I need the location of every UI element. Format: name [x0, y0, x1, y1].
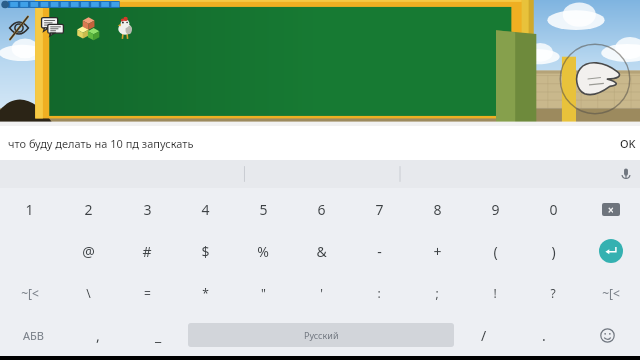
button[interactable]: Backspace: [582, 188, 640, 230]
button[interactable]: 8: [408, 188, 466, 230]
button[interactable]: !: [466, 272, 524, 314]
button[interactable]: ': [292, 272, 350, 314]
staticText: -: [377, 242, 382, 261]
button[interactable]: .: [514, 314, 574, 356]
button[interactable]: 5: [234, 188, 292, 230]
button[interactable]: \: [59, 272, 118, 314]
staticText: ': [320, 285, 323, 301]
staticText: \: [86, 285, 91, 301]
button[interactable]: @: [59, 230, 118, 272]
button[interactable]: 2: [59, 188, 118, 230]
button[interactable]: ): [524, 230, 582, 272]
staticText: 1: [25, 200, 34, 219]
staticText: &: [316, 242, 327, 261]
button[interactable]: #: [118, 230, 176, 272]
staticText: 4: [201, 200, 210, 219]
staticText: .: [542, 326, 546, 345]
staticText: ): [551, 242, 556, 261]
button[interactable]: (: [466, 230, 524, 272]
button[interactable]: Hide UI: [6, 15, 32, 41]
staticText: *: [202, 285, 209, 301]
button[interactable]: Emoji: [574, 314, 640, 356]
staticText: 0: [549, 200, 558, 219]
staticText: что буду делать на 10 пд запускать: [8, 136, 194, 151]
button[interactable]: Character: [112, 15, 138, 41]
staticText: !: [493, 285, 497, 301]
button[interactable]: 3: [118, 188, 176, 230]
button[interactable]: ~[<: [0, 272, 59, 314]
button[interactable]: =: [118, 272, 176, 314]
button[interactable]: OK: [620, 126, 636, 160]
button[interactable]: Русский: [188, 323, 454, 347]
button[interactable]: &: [292, 230, 350, 272]
button[interactable]: /: [454, 314, 514, 356]
button[interactable]: :: [350, 272, 408, 314]
staticText: 3: [143, 200, 152, 219]
staticText: :: [377, 285, 381, 301]
staticText: @: [82, 242, 95, 261]
staticText: /: [481, 326, 487, 345]
button[interactable]: Inventory: [74, 14, 102, 42]
button[interactable]: 0: [524, 188, 582, 230]
staticText: %: [257, 242, 269, 261]
button[interactable]: -: [350, 230, 408, 272]
staticText: Русский: [304, 329, 339, 341]
button[interactable]: 4: [176, 188, 234, 230]
staticText: АБВ: [23, 328, 44, 343]
button[interactable]: +: [408, 230, 466, 272]
staticText: 7: [375, 200, 384, 219]
button[interactable]: %: [234, 230, 292, 272]
button[interactable]: 1: [0, 188, 59, 230]
staticText: ×: [608, 203, 614, 216]
button[interactable]: 7: [350, 188, 408, 230]
staticText: _: [155, 326, 162, 345]
staticText: #: [142, 242, 152, 261]
staticText: (: [493, 242, 498, 261]
staticText: ,: [96, 326, 100, 345]
staticText: =: [144, 285, 151, 301]
button[interactable]: ?: [524, 272, 582, 314]
button[interactable]: ,: [67, 314, 128, 356]
staticText: ~[<: [21, 285, 39, 301]
button[interactable]: ;: [408, 272, 466, 314]
staticText: ;: [435, 285, 439, 301]
staticText: 5: [259, 200, 268, 219]
staticText: ?: [550, 285, 556, 301]
button[interactable]: 9: [466, 188, 524, 230]
button[interactable]: АБВ: [0, 314, 67, 356]
button[interactable]: Action 50: [558, 42, 632, 116]
staticText: 8: [433, 200, 442, 219]
staticText: ": [261, 285, 266, 301]
button[interactable]: Voice input: [612, 160, 640, 188]
button[interactable]: _: [128, 314, 188, 356]
staticText: ~[<: [602, 285, 620, 301]
staticText: 9: [491, 200, 500, 219]
staticText: OK: [620, 136, 636, 151]
staticText: 2: [84, 200, 93, 219]
button[interactable]: Chat: [40, 15, 66, 41]
button[interactable]: 6: [292, 188, 350, 230]
staticText: $: [201, 242, 210, 261]
staticText: +: [433, 242, 442, 261]
button[interactable]: Enter: [582, 230, 640, 272]
button[interactable]: $: [176, 230, 234, 272]
button[interactable]: *: [176, 272, 234, 314]
button[interactable]: ": [234, 272, 292, 314]
button[interactable]: ~[<: [582, 272, 640, 314]
staticText: 6: [317, 200, 326, 219]
